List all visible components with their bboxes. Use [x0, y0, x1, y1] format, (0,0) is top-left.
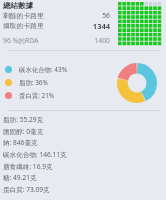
button[interactable]: 蛋白質: 21%: [5, 90, 55, 100]
staticText: 脂肪: 36%: [19, 78, 48, 87]
staticText: 膽固醇: 0毫克: [3, 127, 44, 136]
staticText: 剩餘的卡路里: [3, 11, 44, 20]
staticText: 攝取的卡路里: [3, 21, 44, 30]
staticText: 糖: 49.21克: [3, 173, 37, 182]
staticText: 膳食纖維: 16.9克: [3, 162, 53, 171]
staticText: 鈉: 846毫克: [3, 138, 38, 147]
staticText: 56: [70, 11, 110, 20]
staticText: 總結數據: [3, 1, 33, 10]
staticText: 脂肪: 55.29克: [3, 115, 44, 124]
staticText: 碳水化合物: 43%: [19, 65, 67, 74]
staticText: 蛋白質: 73.09克: [3, 185, 50, 194]
staticText: 碳水化合物: 146.11克: [3, 150, 67, 159]
button[interactable]: 碳水化合物: 43%: [5, 64, 67, 74]
staticText: 96 %的RDA: [3, 36, 39, 45]
staticText: 1400: [70, 36, 110, 45]
staticText: 蛋白質: 21%: [19, 91, 55, 100]
staticText: 1344: [70, 21, 110, 31]
button[interactable]: 脂肪: 36%: [5, 77, 48, 87]
